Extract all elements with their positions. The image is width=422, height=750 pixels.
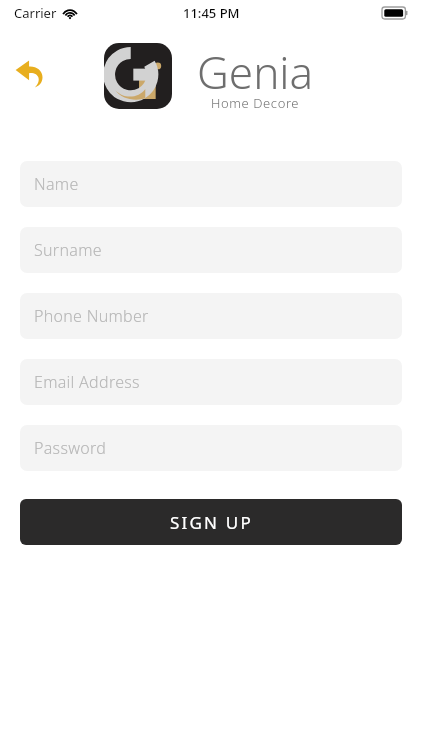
- button[interactable]: Name: [20, 161, 402, 207]
- staticText: Surname: [34, 239, 102, 261]
- staticText: Carrier: [14, 4, 57, 22]
- staticText: Phone Number: [34, 305, 149, 327]
- button[interactable]: Email Address: [20, 359, 402, 405]
- staticText: 11:45 PM: [183, 4, 240, 22]
- staticText: Home Decore: [211, 94, 300, 112]
- staticText: Genia: [197, 42, 314, 102]
- button[interactable]: Surname: [20, 227, 402, 273]
- button[interactable]: Phone Number: [20, 293, 402, 339]
- staticText: SIGN UP: [170, 511, 253, 534]
- button[interactable]: SIGN UP: [20, 499, 402, 545]
- staticText: Password: [34, 437, 107, 459]
- staticText: Email Address: [34, 371, 140, 393]
- button[interactable]: Back: [10, 52, 52, 94]
- button[interactable]: Password: [20, 425, 402, 471]
- staticText: Name: [34, 173, 79, 195]
